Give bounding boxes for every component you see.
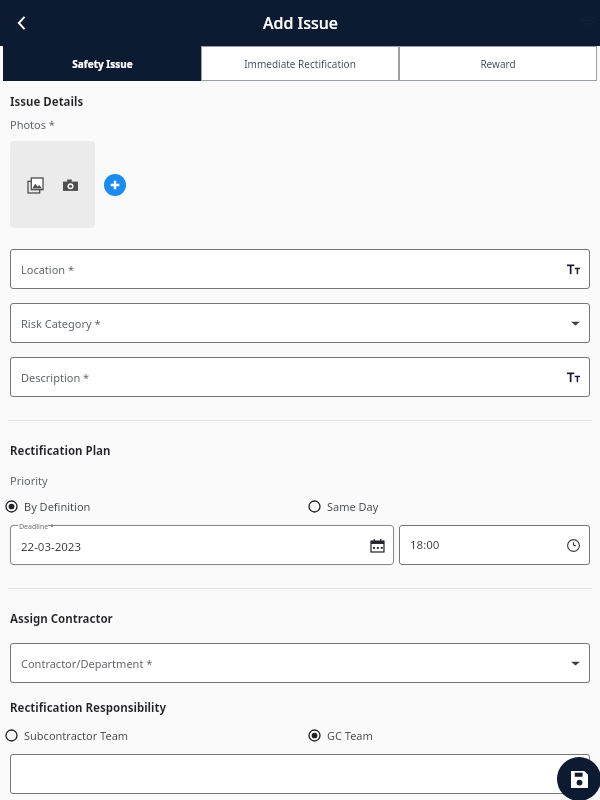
staticText: Add Issue — [263, 12, 338, 34]
staticText: Description * — [21, 370, 90, 385]
button[interactable] — [10, 754, 590, 794]
staticText: Risk Category * — [21, 316, 101, 331]
button[interactable]: Deadline * — [10, 525, 394, 565]
staticText: Safety Issue — [72, 57, 133, 71]
staticText: Rectification Responsibility — [10, 700, 167, 716]
button[interactable]: Back — [4, 5, 40, 41]
staticText: By Definition — [24, 499, 91, 514]
staticText: 18:00 — [410, 537, 440, 553]
button[interactable]: Immediate Rectification — [201, 46, 399, 81]
staticText: Same Day — [327, 499, 379, 514]
button[interactable]: 18:00 — [399, 525, 590, 565]
staticText: Issue Details — [10, 94, 84, 110]
staticText: Immediate Rectification — [244, 57, 356, 71]
button[interactable]: Same Day — [308, 499, 379, 514]
button[interactable]: Risk Category * — [10, 303, 590, 343]
staticText: Rectification Plan — [10, 443, 111, 459]
button[interactable]: Description * — [10, 357, 590, 397]
staticText: GC Team — [327, 728, 373, 743]
staticText: Priority — [10, 473, 48, 488]
button[interactable]: Save — [557, 757, 600, 800]
button[interactable]: Choose from gallery — [24, 174, 46, 196]
staticText: Deadline * — [19, 522, 54, 532]
button[interactable]: Location * — [10, 249, 590, 289]
staticText: Reward — [480, 57, 516, 71]
button[interactable]: Reward — [399, 46, 597, 81]
button[interactable]: By Definition — [5, 499, 308, 514]
button[interactable]: Add photo — [104, 174, 126, 196]
button[interactable]: Safety Issue — [3, 46, 201, 81]
staticText: 22-03-2023 — [21, 539, 82, 555]
button[interactable]: GC Team — [308, 728, 373, 743]
button[interactable]: Subcontractor Team — [5, 728, 308, 743]
staticText: Assign Contractor — [10, 611, 113, 627]
button[interactable]: Contractor/Department * — [10, 643, 590, 683]
staticText: Photos * — [10, 117, 55, 132]
button[interactable]: Take photo — [59, 174, 81, 196]
staticText: Location * — [21, 262, 75, 277]
staticText: Contractor/Department * — [21, 656, 153, 671]
staticText: Subcontractor Team — [24, 728, 129, 743]
